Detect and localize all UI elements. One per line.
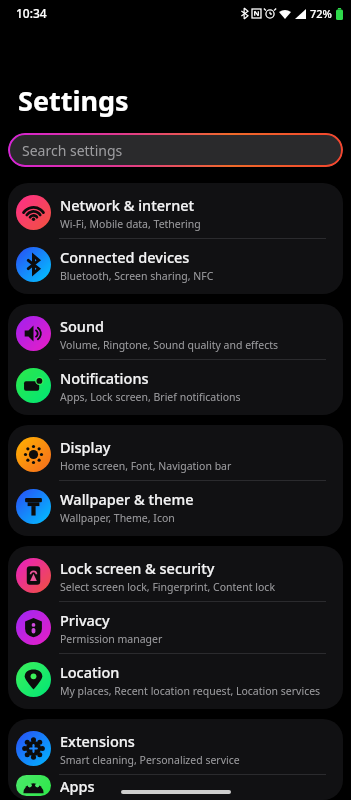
staticText: Permission manager [60,632,163,646]
button[interactable]: Sound [8,308,343,359]
button[interactable]: Lock screen & security [8,550,343,601]
staticText: 10:34 [16,5,47,21]
staticText: Search settings [22,141,123,160]
staticText: Notifications [60,368,149,388]
staticText: Apps, Lock screen, Brief notifications [60,390,241,404]
staticText: Wallpaper, Theme, Icon [60,511,175,525]
button[interactable]: Extensions [8,723,343,774]
button[interactable]: Wallpaper & theme [8,481,343,532]
button[interactable]: Connected devices [8,239,343,290]
staticText: Network & internet [60,195,195,215]
staticText: Apps [60,776,95,796]
staticText: Wi-Fi, Mobile data, Tethering [60,217,201,231]
staticText: Display [60,437,111,457]
staticText: Sound [60,316,105,336]
staticText: Extensions [60,731,135,751]
staticText: Privacy [60,610,110,630]
button[interactable]: Network & internet [8,187,343,238]
staticText: Settings [18,82,129,119]
staticText: My places, Recent location request, Loca… [60,684,321,698]
staticText: Volume, Ringtone, Sound quality and effe… [60,338,279,352]
staticText: Location [60,662,120,682]
staticText: 72% [310,6,332,21]
button[interactable]: Notifications [8,360,343,411]
button[interactable]: Location [8,654,343,705]
button[interactable]: Display [8,429,343,480]
staticText: Wallpaper & theme [60,489,194,509]
staticText: Lock screen & security [60,558,215,578]
staticText: Smart cleaning, Personalized service [60,753,240,767]
staticText: Bluetooth, Screen sharing, NFC [60,269,214,283]
button[interactable]: Privacy [8,602,343,653]
staticText: Home screen, Font, Navigation bar [60,459,232,473]
button[interactable]: Search settings [8,133,343,167]
staticText: Connected devices [60,247,190,267]
button[interactable]: Apps [8,775,343,796]
staticText: Select screen lock, Fingerprint, Content… [60,580,275,594]
